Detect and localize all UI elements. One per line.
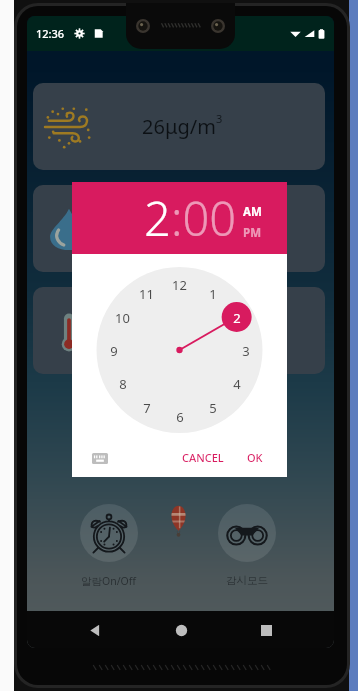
button[interactable]: Back: [78, 613, 112, 647]
staticText: 2: [144, 186, 171, 250]
staticText: AM: [243, 204, 262, 220]
staticText: 11: [139, 285, 154, 303]
staticText: 감시모드: [226, 574, 268, 587]
staticText: 8: [119, 375, 127, 393]
button[interactable]: OK: [241, 445, 269, 470]
staticText: :00: [171, 186, 237, 250]
button[interactable]: 알람On/Off: [80, 504, 138, 588]
button[interactable]: 26μg/m: [33, 83, 325, 170]
button[interactable]: 감시모드: [218, 504, 276, 587]
button[interactable]: [33, 185, 325, 272]
staticText: 10: [115, 309, 130, 327]
staticText: 6: [176, 408, 184, 426]
staticText: 1: [209, 285, 217, 303]
staticText: 2: [233, 309, 241, 327]
staticText: CANCEL: [182, 450, 224, 465]
staticText: 7: [143, 399, 151, 417]
staticText: 알람On/Off: [81, 574, 137, 588]
staticText: OK: [247, 450, 263, 465]
staticText: 3: [242, 342, 250, 360]
button[interactable]: Keyboard input: [88, 446, 112, 470]
staticText: PM: [243, 225, 261, 241]
staticText: 3: [216, 111, 223, 126]
button[interactable]: Recents: [249, 613, 283, 647]
staticText: 4: [233, 375, 241, 393]
staticText: 12:36: [36, 26, 65, 41]
button[interactable]: Home: [164, 613, 198, 647]
staticText: 9: [110, 342, 118, 360]
staticText: 5: [209, 399, 217, 417]
button[interactable]: [33, 287, 325, 374]
staticText: 12: [172, 276, 187, 294]
button[interactable]: CANCEL: [176, 445, 230, 470]
staticText: 26μg/m: [142, 113, 216, 140]
